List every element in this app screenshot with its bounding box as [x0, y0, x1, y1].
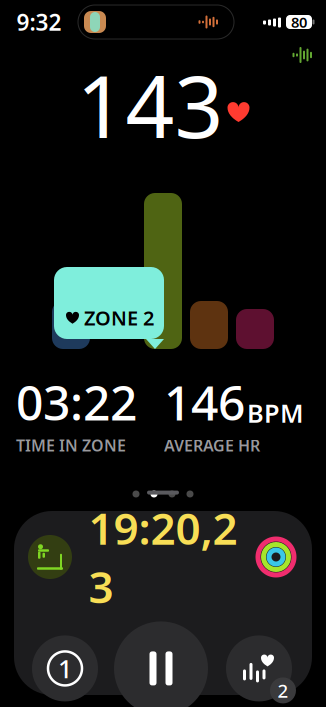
staticText: TIME IN ZONE — [16, 435, 126, 456]
staticText: 03:22 — [16, 370, 137, 434]
button[interactable]: Workout type, treadmill run — [28, 535, 72, 579]
staticText: 80 — [291, 12, 307, 32]
staticText: 143 — [76, 48, 223, 162]
button[interactable]: Activity rings — [254, 535, 298, 579]
staticText: 2 — [277, 678, 288, 703]
staticText: 1 — [58, 652, 72, 685]
staticText: ZONE 2 — [84, 304, 154, 331]
staticText: 19:20,23 — [88, 499, 237, 615]
staticText: 146 — [164, 370, 245, 434]
button[interactable]: Lap 1, add lap — [32, 635, 98, 701]
staticText: 9:32 — [16, 7, 61, 37]
button[interactable]: Pause workout — [114, 621, 208, 707]
staticText: AVERAGE HR — [164, 435, 260, 456]
button[interactable]: Heart rate metrics, 2 — [224, 634, 294, 702]
staticText: BPM — [247, 396, 304, 430]
